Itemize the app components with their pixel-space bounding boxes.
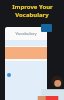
button[interactable]: Vocabulary (5, 27, 47, 100)
staticText: Improve Your (12, 3, 53, 11)
staticText: Vocabulary (15, 31, 37, 36)
staticText: Vocabulary (15, 11, 49, 19)
